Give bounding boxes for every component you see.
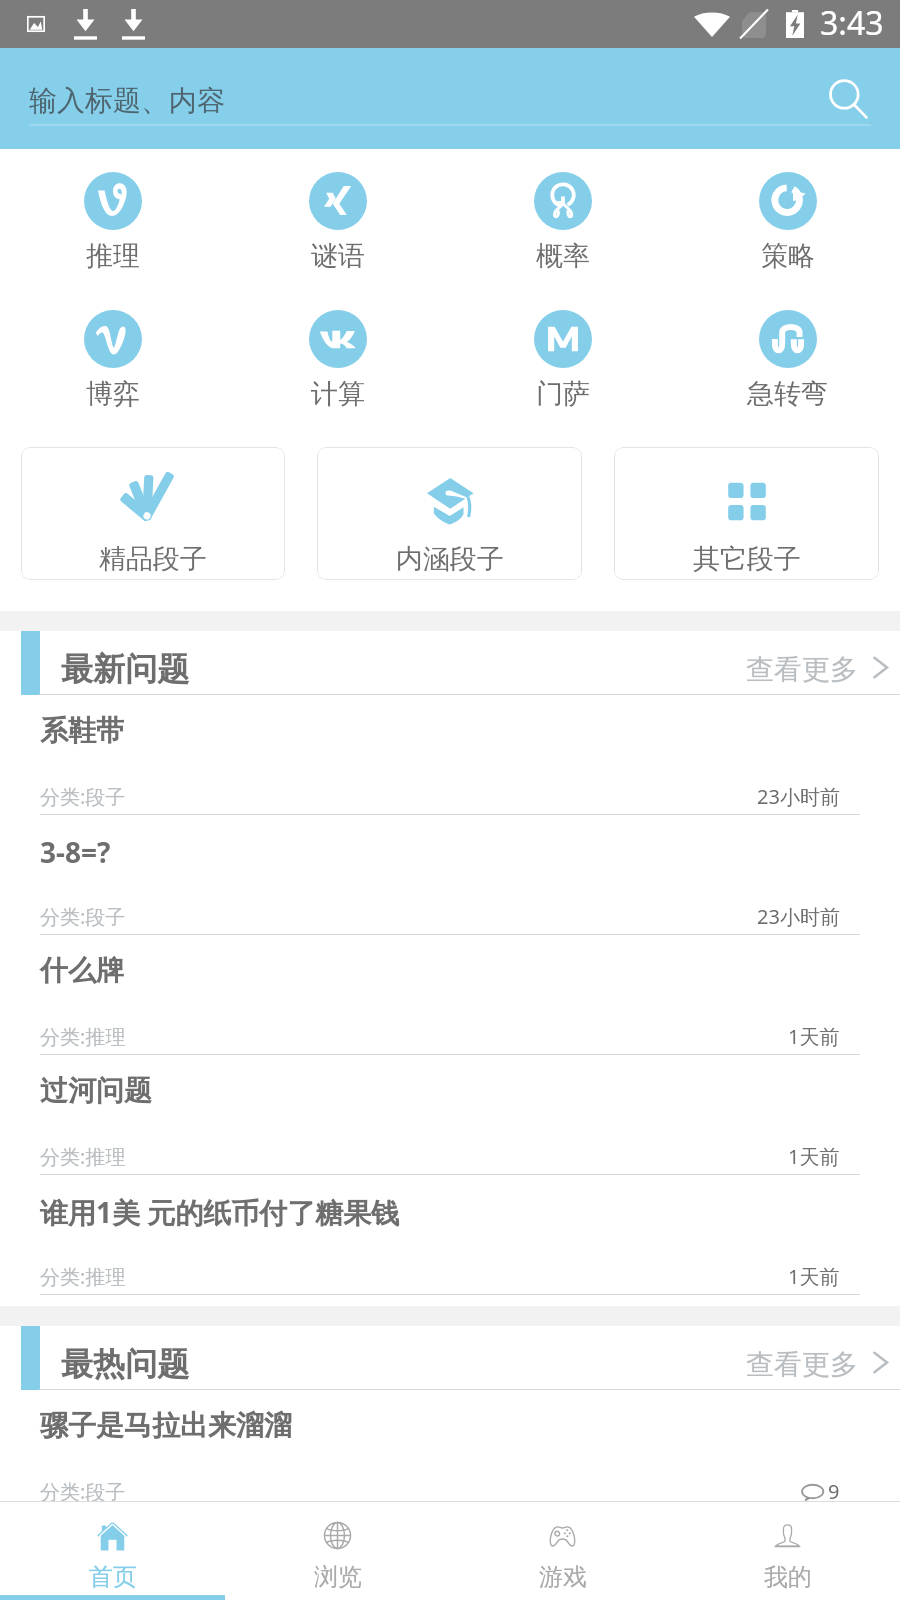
staticText: 分类:推理 bbox=[40, 1143, 126, 1170]
staticText: 分类:推理 bbox=[40, 1263, 126, 1290]
staticText: 23小时前 bbox=[757, 783, 840, 810]
staticText: 内涵段子 bbox=[396, 542, 504, 576]
button[interactable]: Search bbox=[818, 69, 878, 129]
staticText: 其它段子 bbox=[693, 542, 801, 576]
staticText: 1天前 bbox=[788, 1143, 840, 1170]
staticText: 急转弯 bbox=[747, 377, 828, 411]
button[interactable]: 其它段子 bbox=[614, 447, 879, 580]
button[interactable]: 首页 bbox=[0, 1502, 225, 1595]
button[interactable]: 过河问题 bbox=[0, 1055, 900, 1175]
button[interactable]: 概率 bbox=[450, 172, 675, 273]
staticText: 分类:段子 bbox=[40, 1478, 126, 1505]
staticText: 策略 bbox=[761, 239, 815, 273]
staticText: 骡子是马拉出来溜溜 bbox=[40, 1408, 292, 1443]
staticText: 首页 bbox=[89, 1562, 137, 1592]
button[interactable]: 游戏 bbox=[450, 1502, 675, 1595]
staticText: 分类:推理 bbox=[40, 1023, 126, 1050]
staticText: 最新问题 bbox=[61, 649, 189, 689]
staticText: 输入标题、内容 bbox=[29, 83, 225, 118]
staticText: 分类:段子 bbox=[40, 903, 126, 930]
button[interactable]: 推理 bbox=[0, 172, 225, 273]
staticText: 谁用1美 元的纸币付了糖果钱 bbox=[40, 1193, 400, 1231]
button[interactable]: 内涵段子 bbox=[317, 447, 582, 580]
button[interactable]: 系鞋带 bbox=[0, 695, 900, 815]
staticText: 游戏 bbox=[539, 1562, 587, 1592]
staticText: 最热问题 bbox=[61, 1344, 189, 1384]
button[interactable]: 我的 bbox=[675, 1502, 900, 1595]
staticText: 1天前 bbox=[788, 1263, 840, 1290]
staticText: 系鞋带 bbox=[40, 713, 124, 748]
button[interactable]: 博弈 bbox=[0, 310, 225, 411]
staticText: 3:43 bbox=[820, 1, 884, 45]
staticText: 浏览 bbox=[314, 1562, 362, 1592]
button[interactable]: 急转弯 bbox=[675, 310, 900, 411]
staticText: 计算 bbox=[311, 377, 365, 411]
staticText: 查看更多 bbox=[746, 1347, 858, 1382]
staticText: 我的 bbox=[764, 1562, 812, 1592]
staticText: 门萨 bbox=[536, 377, 590, 411]
button[interactable]: 计算 bbox=[225, 310, 450, 411]
button[interactable]: 策略 bbox=[675, 172, 900, 273]
staticText: 过河问题 bbox=[40, 1073, 152, 1108]
staticText: 1天前 bbox=[788, 1023, 840, 1050]
button[interactable]: 谜语 bbox=[225, 172, 450, 273]
button[interactable]: 3-8=? bbox=[0, 815, 900, 935]
staticText: 什么牌 bbox=[40, 953, 124, 988]
staticText: 推理 bbox=[86, 239, 140, 273]
staticText: 分类:段子 bbox=[40, 783, 126, 810]
staticText: 3-8=? bbox=[40, 833, 111, 871]
staticText: 23小时前 bbox=[757, 903, 840, 930]
staticText: 查看更多 bbox=[746, 652, 858, 687]
staticText: 谜语 bbox=[311, 239, 365, 273]
staticText: 博弈 bbox=[86, 377, 140, 411]
button[interactable]: 门萨 bbox=[450, 310, 675, 411]
staticText: 概率 bbox=[536, 239, 590, 273]
button[interactable]: 精品段子 bbox=[21, 447, 285, 580]
staticText: 精品段子 bbox=[99, 542, 207, 576]
button[interactable]: 浏览 bbox=[225, 1502, 450, 1595]
staticText: 9 bbox=[828, 1478, 840, 1505]
button[interactable]: 什么牌 bbox=[0, 935, 900, 1055]
button[interactable]: 查看更多 bbox=[746, 1326, 900, 1390]
button[interactable]: 查看更多 bbox=[746, 631, 900, 695]
button[interactable]: 骡子是马拉出来溜溜 bbox=[0, 1390, 900, 1510]
button[interactable]: 谁用1美 元的纸币付了糖果钱 bbox=[0, 1175, 900, 1295]
